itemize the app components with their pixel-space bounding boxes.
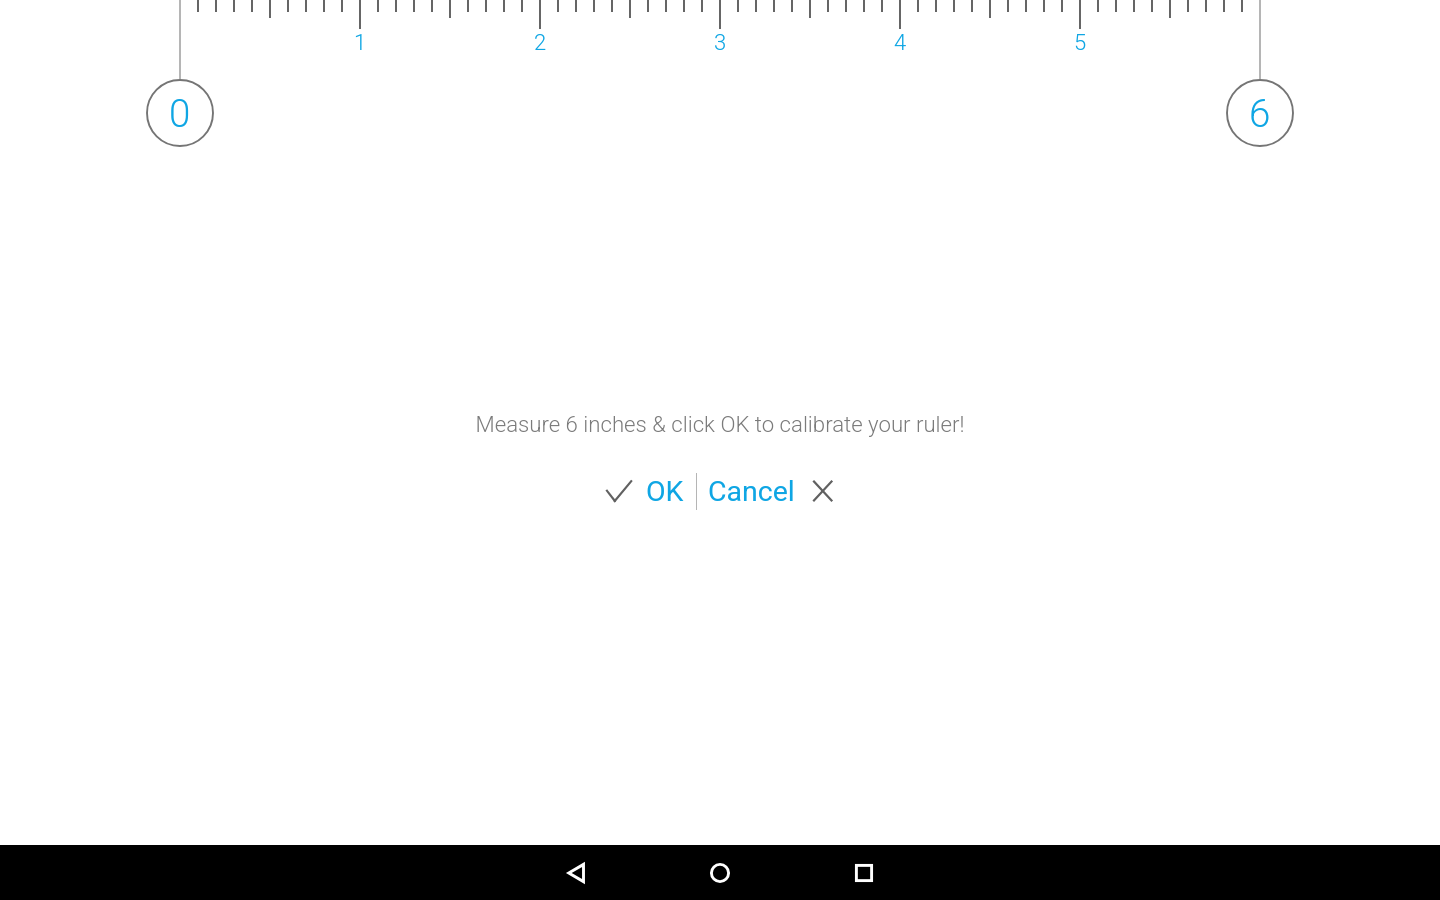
staticText: 5: [1074, 30, 1087, 56]
button[interactable]: OK: [598, 471, 684, 511]
staticText: OK: [646, 475, 684, 508]
staticText: 2: [534, 30, 547, 56]
staticText: 3: [714, 30, 727, 56]
button[interactable]: Home: [693, 845, 747, 900]
button[interactable]: Marker 6: [1226, 79, 1294, 147]
button[interactable]: Back: [550, 845, 604, 900]
staticText: Cancel: [708, 475, 795, 508]
button[interactable]: Cancel: [708, 471, 837, 511]
staticText: 0: [169, 91, 191, 136]
staticText: 1: [354, 30, 367, 56]
staticText: 4: [894, 30, 907, 56]
staticText: Measure 6 inches & click OK to calibrate…: [475, 411, 965, 437]
button[interactable]: Recent apps: [837, 845, 891, 900]
staticText: 6: [1249, 91, 1271, 136]
button[interactable]: Marker 0: [146, 79, 214, 147]
